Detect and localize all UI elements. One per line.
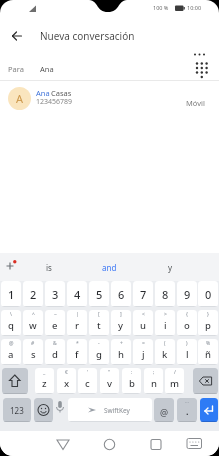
button[interactable]: { [177,310,197,336]
button[interactable]: ( [155,339,175,365]
button[interactable]: % [198,339,218,365]
staticText: is [46,262,52,273]
button[interactable]: Para [0,58,219,81]
button[interactable]: and [90,253,128,281]
staticText: a [8,348,14,361]
button[interactable]: 9 [177,281,197,307]
staticText: k [162,348,168,361]
button[interactable]: is [36,253,62,281]
button[interactable]: 0 [198,281,218,307]
button[interactable]: 2 [23,281,43,307]
button[interactable]: 1 [1,281,21,307]
staticText: z [42,377,47,390]
button[interactable]: } [198,310,218,336]
staticText: @ [9,340,14,347]
staticText: " [108,369,111,376]
button[interactable] [200,398,218,422]
button[interactable]: * [67,339,87,365]
button[interactable]: 8 [155,281,175,307]
staticText: l [186,348,189,361]
staticText: r [75,319,80,332]
button[interactable]: > [155,310,175,336]
button[interactable]: _ [35,368,54,394]
staticText: ' [87,369,89,376]
button[interactable]: y [156,253,184,281]
button[interactable]: 6 [111,281,131,307]
button[interactable]: = [133,339,153,365]
button[interactable] [2,368,28,394]
button[interactable] [53,435,73,453]
staticText: j [142,348,145,361]
button[interactable] [185,434,204,449]
staticText: 9 [184,287,191,302]
staticText: ; [153,369,155,376]
button[interactable]: : [122,368,141,394]
staticText: # [31,340,35,347]
button[interactable]: & [45,339,65,365]
staticText: Para [8,64,24,74]
staticText: e [52,319,58,332]
button[interactable]: 7 [133,281,153,307]
button[interactable]: @ [154,398,174,422]
staticText: Casas [51,88,72,98]
staticText: A [16,91,24,106]
button[interactable]: < [133,310,153,336]
staticText: ... [185,398,190,405]
button[interactable]: + [111,339,131,365]
button[interactable] [192,48,208,60]
staticText: Nueva conversación [40,29,135,43]
button[interactable] [4,259,18,273]
button[interactable]: ] [111,310,131,336]
staticText: . [186,405,189,417]
staticText: @ [160,406,169,418]
button[interactable]: # [23,339,43,365]
button[interactable]: ' [78,368,97,394]
button[interactable]: € [57,368,76,394]
button[interactable]: A [0,83,219,114]
staticText: u [140,319,146,332]
button[interactable] [146,435,166,453]
button[interactable]: - [89,339,109,365]
button[interactable] [193,368,218,394]
button[interactable]: \ [1,310,21,336]
button[interactable]: ~ [45,310,65,336]
button[interactable]: | [67,310,87,336]
staticText: 7 [140,287,147,302]
button[interactable]: / [165,368,184,394]
staticText: 8 [162,287,169,302]
button[interactable]: SwiftKey [68,398,152,422]
staticText: t [97,319,101,332]
button[interactable] [6,28,24,44]
button[interactable]: " [100,368,119,394]
staticText: 123 [10,405,24,416]
button[interactable]: [ [89,310,109,336]
staticText: - [98,340,100,347]
staticText: 1 [8,287,15,302]
staticText: < [142,311,145,318]
button[interactable]: 4 [67,281,87,307]
staticText: ñ [205,348,211,361]
staticText: g [96,348,102,361]
button[interactable] [99,435,120,453]
staticText: Móvil [186,98,205,108]
staticText: p [205,319,211,332]
button[interactable]: 5 [89,281,109,307]
button[interactable]: ... [177,398,197,422]
staticText: y [168,262,173,273]
staticText: b [129,377,135,390]
button[interactable]: 123 [3,398,31,422]
button[interactable]: ^ [23,310,43,336]
staticText: n [151,377,157,390]
staticText: ~ [54,311,57,318]
staticText: 3 [52,287,59,302]
staticText: 5 [96,287,103,302]
button[interactable]: ; [144,368,163,394]
staticText: v [107,377,113,390]
staticText: Ana [36,88,50,98]
button[interactable]: ) [177,339,197,365]
staticText: d [52,348,58,361]
staticText: & [53,340,57,347]
button[interactable]: 3 [45,281,65,307]
button[interactable] [34,398,53,422]
button[interactable]: @ [1,339,21,365]
